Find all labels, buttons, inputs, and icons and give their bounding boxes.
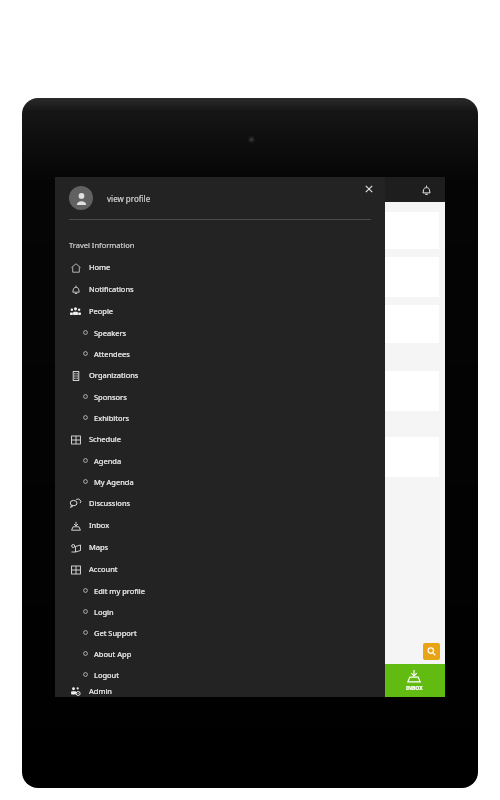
staticText: Organizations: [89, 370, 139, 380]
staticText: INBOX: [406, 685, 423, 692]
button[interactable]: Speakers: [55, 322, 385, 343]
staticText: view profile: [107, 193, 151, 204]
button[interactable]: Home: [55, 256, 385, 278]
button[interactable]: People: [55, 300, 385, 322]
button[interactable]: Login: [55, 601, 385, 622]
button[interactable]: Edit my profile: [55, 580, 385, 601]
button[interactable]: [61, 257, 439, 297]
staticText: Maps: [89, 542, 109, 552]
button[interactable]: [61, 437, 439, 477]
staticText: Inbox: [89, 520, 110, 530]
button[interactable]: Schedule: [55, 428, 385, 450]
button[interactable]: Search: [423, 643, 440, 660]
button[interactable]: Admin: [55, 685, 385, 697]
staticText: Logout: [94, 670, 119, 680]
button[interactable]: [61, 371, 439, 411]
staticText: About App: [94, 649, 132, 659]
button[interactable]: Account: [55, 558, 385, 580]
staticText: Admin: [89, 686, 112, 696]
button[interactable]: Maps: [55, 536, 385, 558]
staticText: Travel Information: [69, 240, 135, 250]
staticText: Attendees: [94, 349, 130, 359]
staticText: Edit my profile: [94, 586, 145, 596]
staticText: Notifications: [89, 284, 134, 294]
button[interactable]: My Agenda: [55, 471, 385, 492]
staticText: Login: [94, 607, 114, 617]
button[interactable]: Logout: [55, 664, 385, 685]
button[interactable]: Sponsors: [55, 386, 385, 407]
staticText: Discussions: [89, 498, 131, 508]
button[interactable]: About App: [55, 643, 385, 664]
staticText: Schedule: [89, 434, 121, 444]
button[interactable]: [61, 212, 439, 249]
button[interactable]: Exhibitors: [55, 407, 385, 428]
staticText: Sponsors: [94, 392, 127, 402]
button[interactable]: Notifications: [55, 278, 385, 300]
staticText: Home: [89, 262, 111, 272]
staticText: Get Support: [94, 628, 137, 638]
button[interactable]: Agenda: [55, 450, 385, 471]
button[interactable]: Notifications: [415, 179, 437, 201]
staticText: Account: [89, 564, 118, 574]
button[interactable]: Inbox: [55, 514, 385, 536]
staticText: My Agenda: [94, 477, 134, 487]
button[interactable]: view profile: [69, 177, 385, 219]
button[interactable]: Get Support: [55, 622, 385, 643]
button[interactable]: Organizations: [55, 364, 385, 386]
button[interactable]: Attendees: [55, 343, 385, 364]
staticText: Agenda: [94, 456, 122, 466]
button[interactable]: INBOX: [383, 664, 445, 697]
button[interactable]: Close: [359, 179, 379, 199]
staticText: Speakers: [94, 328, 127, 338]
button[interactable]: [61, 305, 439, 343]
staticText: Exhibitors: [94, 413, 130, 423]
button[interactable]: Discussions: [55, 492, 385, 514]
staticText: People: [89, 306, 114, 316]
